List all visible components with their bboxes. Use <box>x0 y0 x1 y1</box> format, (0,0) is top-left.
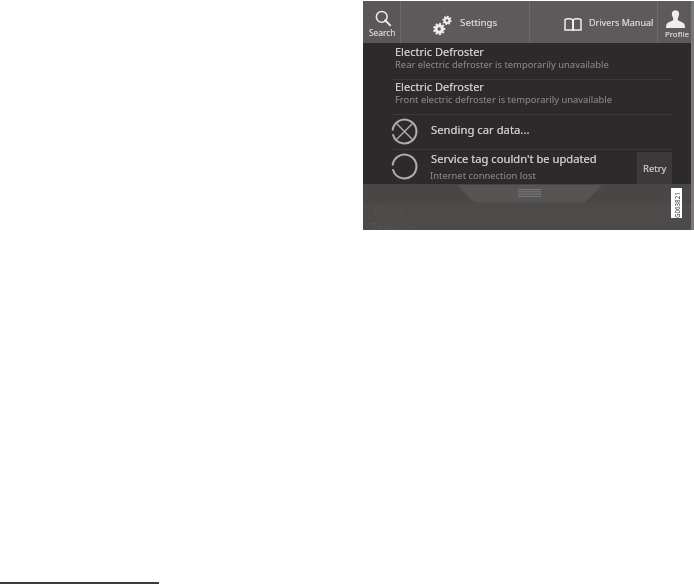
staticText: Rear electric defroster is temporarily u… <box>395 58 609 71</box>
staticText: Drivers Manual <box>589 16 654 28</box>
staticText: Internet connection lost <box>430 169 536 182</box>
staticText: Electric Defroster <box>395 79 484 94</box>
button[interactable]: Service tag couldn't be updated <box>363 149 694 184</box>
staticText: Sending car data... <box>431 122 530 137</box>
staticText: Settings <box>460 16 498 29</box>
button[interactable]: Electric Defroster <box>363 43 694 78</box>
button[interactable]: Sending car data... <box>363 114 694 149</box>
button[interactable]: Profile <box>657 1 691 43</box>
staticText: Retry <box>643 162 667 175</box>
staticText: Profile <box>665 29 689 40</box>
button[interactable]: Search <box>363 1 400 43</box>
staticText: Service tag couldn't be updated <box>431 151 597 166</box>
button[interactable]: Retry <box>637 152 672 185</box>
staticText: G063821 <box>673 188 681 218</box>
staticText: Front electric defroster is temporarily … <box>395 93 612 106</box>
staticText: Search <box>369 27 396 38</box>
button[interactable]: Drivers Manual <box>530 1 657 43</box>
button[interactable]: Settings <box>401 1 529 43</box>
staticText: Electric Defroster <box>395 44 484 59</box>
button[interactable]: Electric Defroster <box>363 78 694 113</box>
